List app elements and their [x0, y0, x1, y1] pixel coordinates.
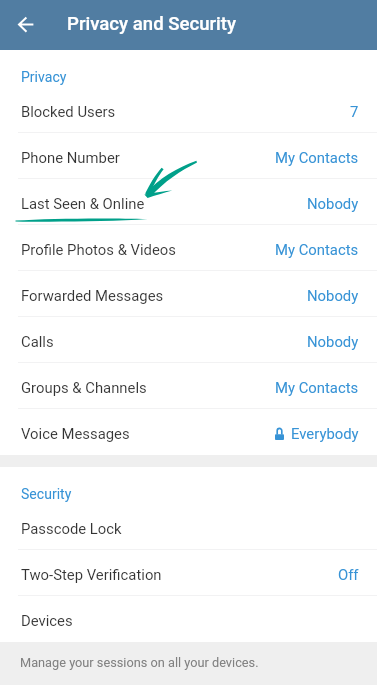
staticText: Phone Number [21, 149, 120, 166]
button[interactable]: Two-Step Verification [0, 550, 377, 596]
button[interactable]: Last Seen & Online [0, 179, 377, 225]
staticText: Everybody [291, 425, 359, 442]
button[interactable]: Groups & Channels [0, 363, 377, 409]
button[interactable]: Back [11, 9, 41, 39]
button[interactable]: Calls [0, 317, 377, 363]
staticText: Nobody [307, 195, 359, 212]
button[interactable]: Blocked Users [0, 87, 377, 133]
button[interactable]: Profile Photos & Videos [0, 225, 377, 271]
staticText: My Contacts [275, 149, 359, 166]
staticText: Last Seen & Online [21, 195, 145, 212]
staticText: Two-Step Verification [21, 566, 162, 583]
button[interactable]: Phone Number [0, 133, 377, 179]
staticText: Devices [21, 612, 73, 629]
staticText: Security [21, 486, 72, 502]
staticText: Privacy and Security [67, 13, 237, 35]
staticText: My Contacts [275, 241, 359, 258]
staticText: 7 [350, 103, 359, 120]
staticText: Privacy [21, 69, 67, 85]
staticText: Passcode Lock [21, 520, 122, 537]
staticText: My Contacts [275, 379, 359, 396]
staticText: Forwarded Messages [21, 287, 164, 304]
staticText: Nobody [307, 287, 359, 304]
button[interactable]: Voice Messages [0, 409, 377, 455]
staticText: Calls [21, 333, 54, 350]
staticText: Blocked Users [21, 103, 116, 120]
staticText: Manage your sessions on all your devices… [20, 655, 259, 670]
staticText: Profile Photos & Videos [21, 241, 176, 258]
button[interactable]: Forwarded Messages [0, 271, 377, 317]
staticText: Nobody [307, 333, 359, 350]
staticText: Voice Messages [21, 425, 130, 442]
staticText: Groups & Channels [21, 379, 147, 396]
button[interactable]: Passcode Lock [0, 504, 377, 550]
button[interactable]: Devices [0, 596, 377, 642]
staticText: Off [338, 566, 359, 583]
